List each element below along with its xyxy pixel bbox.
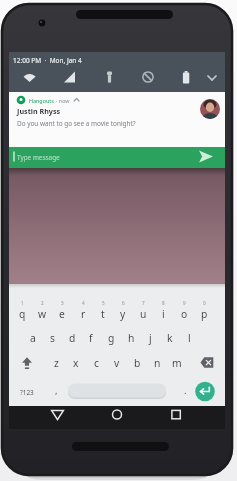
staticText: 7 — [142, 300, 145, 306]
staticText: b — [134, 356, 141, 370]
button[interactable]: ?123 — [12, 383, 42, 401]
button[interactable]: o — [174, 305, 194, 323]
staticText: r — [81, 307, 86, 321]
staticText: c — [94, 356, 99, 370]
button[interactable]: l — [179, 329, 199, 347]
button[interactable]: x — [66, 354, 86, 372]
staticText: t — [101, 307, 105, 321]
button[interactable] — [105, 406, 130, 429]
staticText: z — [54, 356, 59, 370]
button[interactable]: g — [101, 329, 121, 347]
staticText: h — [128, 331, 135, 345]
button[interactable] — [45, 406, 70, 429]
staticText: p — [201, 307, 208, 321]
staticText: l — [188, 331, 191, 345]
staticText: q — [19, 307, 26, 321]
button[interactable] — [9, 92, 225, 147]
staticText: d — [69, 331, 76, 345]
staticText: Type message — [17, 153, 60, 162]
button[interactable]: . — [177, 381, 193, 399]
button[interactable]: f — [81, 329, 101, 347]
button[interactable]: v — [107, 354, 127, 372]
button[interactable]: z — [46, 354, 66, 372]
staticText: u — [140, 307, 147, 321]
staticText: f — [89, 331, 93, 345]
staticText: a — [30, 331, 36, 345]
button[interactable]: i — [153, 305, 173, 323]
staticText: 1 — [21, 300, 24, 306]
button[interactable]: c — [86, 354, 106, 372]
staticText: k — [167, 331, 173, 345]
button[interactable]: y — [113, 305, 133, 323]
button[interactable] — [9, 147, 225, 168]
staticText: e — [59, 307, 65, 321]
button[interactable] — [195, 382, 215, 402]
staticText: g — [108, 331, 115, 345]
staticText: Justin Rhyss — [17, 106, 61, 116]
staticText: 12:00 PM · Mon, Jan 4 — [13, 56, 82, 65]
staticText: 0 — [203, 300, 206, 306]
button[interactable]: s — [42, 329, 62, 347]
button[interactable]: j — [140, 329, 160, 347]
button[interactable]: p — [194, 305, 214, 323]
staticText: , — [55, 384, 58, 397]
staticText: y — [120, 307, 126, 321]
button[interactable]: b — [127, 354, 147, 372]
button[interactable]: w — [32, 305, 52, 323]
button[interactable]: k — [160, 329, 180, 347]
staticText: 8 — [162, 300, 165, 306]
staticText: 6 — [122, 300, 125, 306]
button[interactable]: e — [52, 305, 72, 323]
button[interactable]: u — [133, 305, 153, 323]
staticText: s — [50, 331, 55, 345]
staticText: 5 — [102, 300, 105, 306]
staticText: Do you want to go see a movie tonight? — [17, 119, 136, 128]
staticText: x — [73, 356, 79, 370]
staticText: ?123 — [20, 388, 34, 397]
staticText: v — [114, 356, 120, 370]
staticText: 2 — [41, 300, 44, 306]
button[interactable]: t — [93, 305, 113, 323]
staticText: m — [172, 356, 182, 370]
staticText: Hangouts — [29, 97, 54, 104]
button[interactable]: n — [147, 354, 167, 372]
staticText: n — [154, 356, 161, 370]
button[interactable]: h — [121, 329, 141, 347]
button[interactable]: a — [23, 329, 43, 347]
button[interactable]: m — [167, 354, 187, 372]
button[interactable] — [164, 406, 189, 429]
staticText: j — [149, 331, 152, 345]
staticText: . — [184, 384, 187, 397]
staticText: w — [38, 307, 47, 321]
button[interactable]: r — [73, 305, 93, 323]
staticText: i — [162, 307, 165, 321]
staticText: 3 — [61, 300, 64, 306]
staticText: 9 — [183, 300, 186, 306]
staticText: o — [181, 307, 188, 321]
button[interactable] — [68, 384, 166, 399]
button[interactable]: q — [12, 305, 32, 323]
button[interactable]: , — [48, 381, 64, 399]
staticText: 4 — [82, 300, 85, 306]
staticText: · now — [56, 97, 70, 104]
button[interactable]: d — [62, 329, 82, 347]
